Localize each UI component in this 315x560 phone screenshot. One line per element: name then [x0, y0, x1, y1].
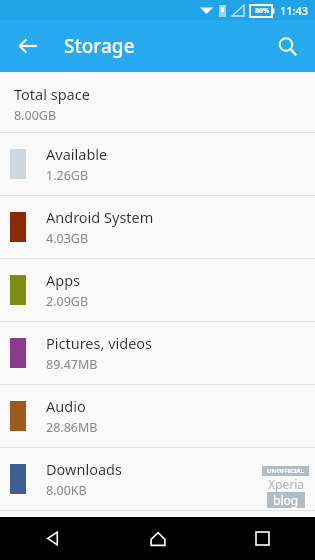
staticText: Downloads: [46, 459, 122, 479]
staticText: 1.26GB: [46, 167, 89, 184]
button[interactable]: Back: [8, 26, 48, 66]
staticText: 80%: [255, 6, 270, 16]
staticText: Android System: [46, 207, 154, 227]
staticText: Xperia: [268, 476, 304, 492]
button[interactable]: Audio: [0, 385, 315, 447]
staticText: Total space: [14, 84, 90, 104]
button[interactable]: Search: [267, 26, 307, 66]
staticText: UNOFFICIAL: [267, 467, 304, 475]
staticText: 4.03GB: [46, 230, 89, 247]
button[interactable]: Apps: [0, 259, 315, 321]
staticText: 2.09GB: [46, 293, 89, 310]
staticText: 28.86MB: [46, 419, 98, 436]
button[interactable]: Pictures, videos: [0, 322, 315, 384]
staticText: 89.47MB: [46, 356, 98, 373]
button[interactable]: Recents: [210, 517, 315, 560]
staticText: Pictures, videos: [46, 333, 153, 353]
button[interactable]: Available: [0, 133, 315, 195]
staticText: Storage: [64, 33, 135, 59]
staticText: blog: [273, 492, 299, 508]
staticText: 8.00GB: [14, 107, 57, 124]
staticText: 11:43: [280, 3, 309, 18]
button[interactable]: Back: [0, 517, 105, 560]
staticText: Audio: [46, 396, 86, 416]
button[interactable]: Total space: [0, 72, 315, 132]
button[interactable]: Android System: [0, 196, 315, 258]
button[interactable]: Home: [105, 517, 210, 560]
button[interactable]: Downloads: [0, 448, 315, 510]
staticText: Apps: [46, 270, 81, 290]
staticText: Available: [46, 144, 108, 164]
staticText: 8.00KB: [46, 482, 87, 499]
